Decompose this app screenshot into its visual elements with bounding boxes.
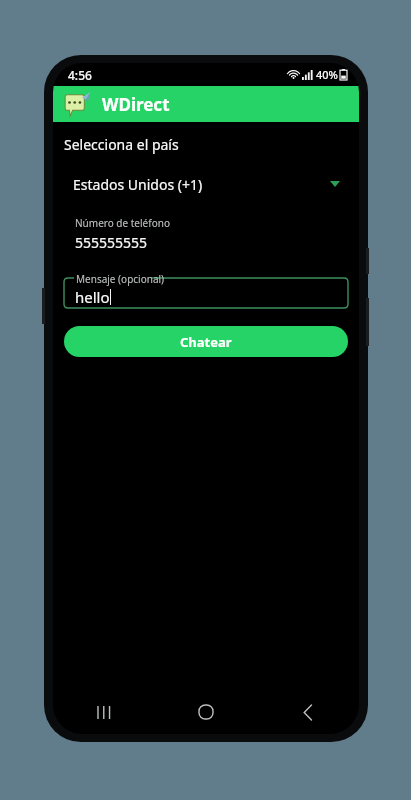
staticText: WDirect (102, 93, 170, 116)
button[interactable]: Recent apps (53, 690, 155, 734)
staticText: hello (75, 287, 110, 307)
staticText: 40% (316, 67, 338, 82)
button[interactable]: Estados Unidos (+1) (64, 171, 348, 197)
staticText: Mensaje (opcional) (76, 272, 165, 286)
staticText: 555555555 (75, 233, 148, 252)
button[interactable]: Home (155, 690, 257, 734)
staticText: Selecciona el país (64, 135, 179, 154)
staticText: 4:56 (68, 67, 92, 83)
staticText: Número de teléfono (75, 216, 170, 230)
button[interactable]: Back (257, 690, 359, 734)
staticText: Estados Unidos (+1) (73, 175, 203, 194)
button[interactable]: Chatear (64, 326, 348, 357)
staticText: Chatear (180, 333, 232, 351)
button[interactable]: Mensaje (opcional) (64, 272, 348, 308)
